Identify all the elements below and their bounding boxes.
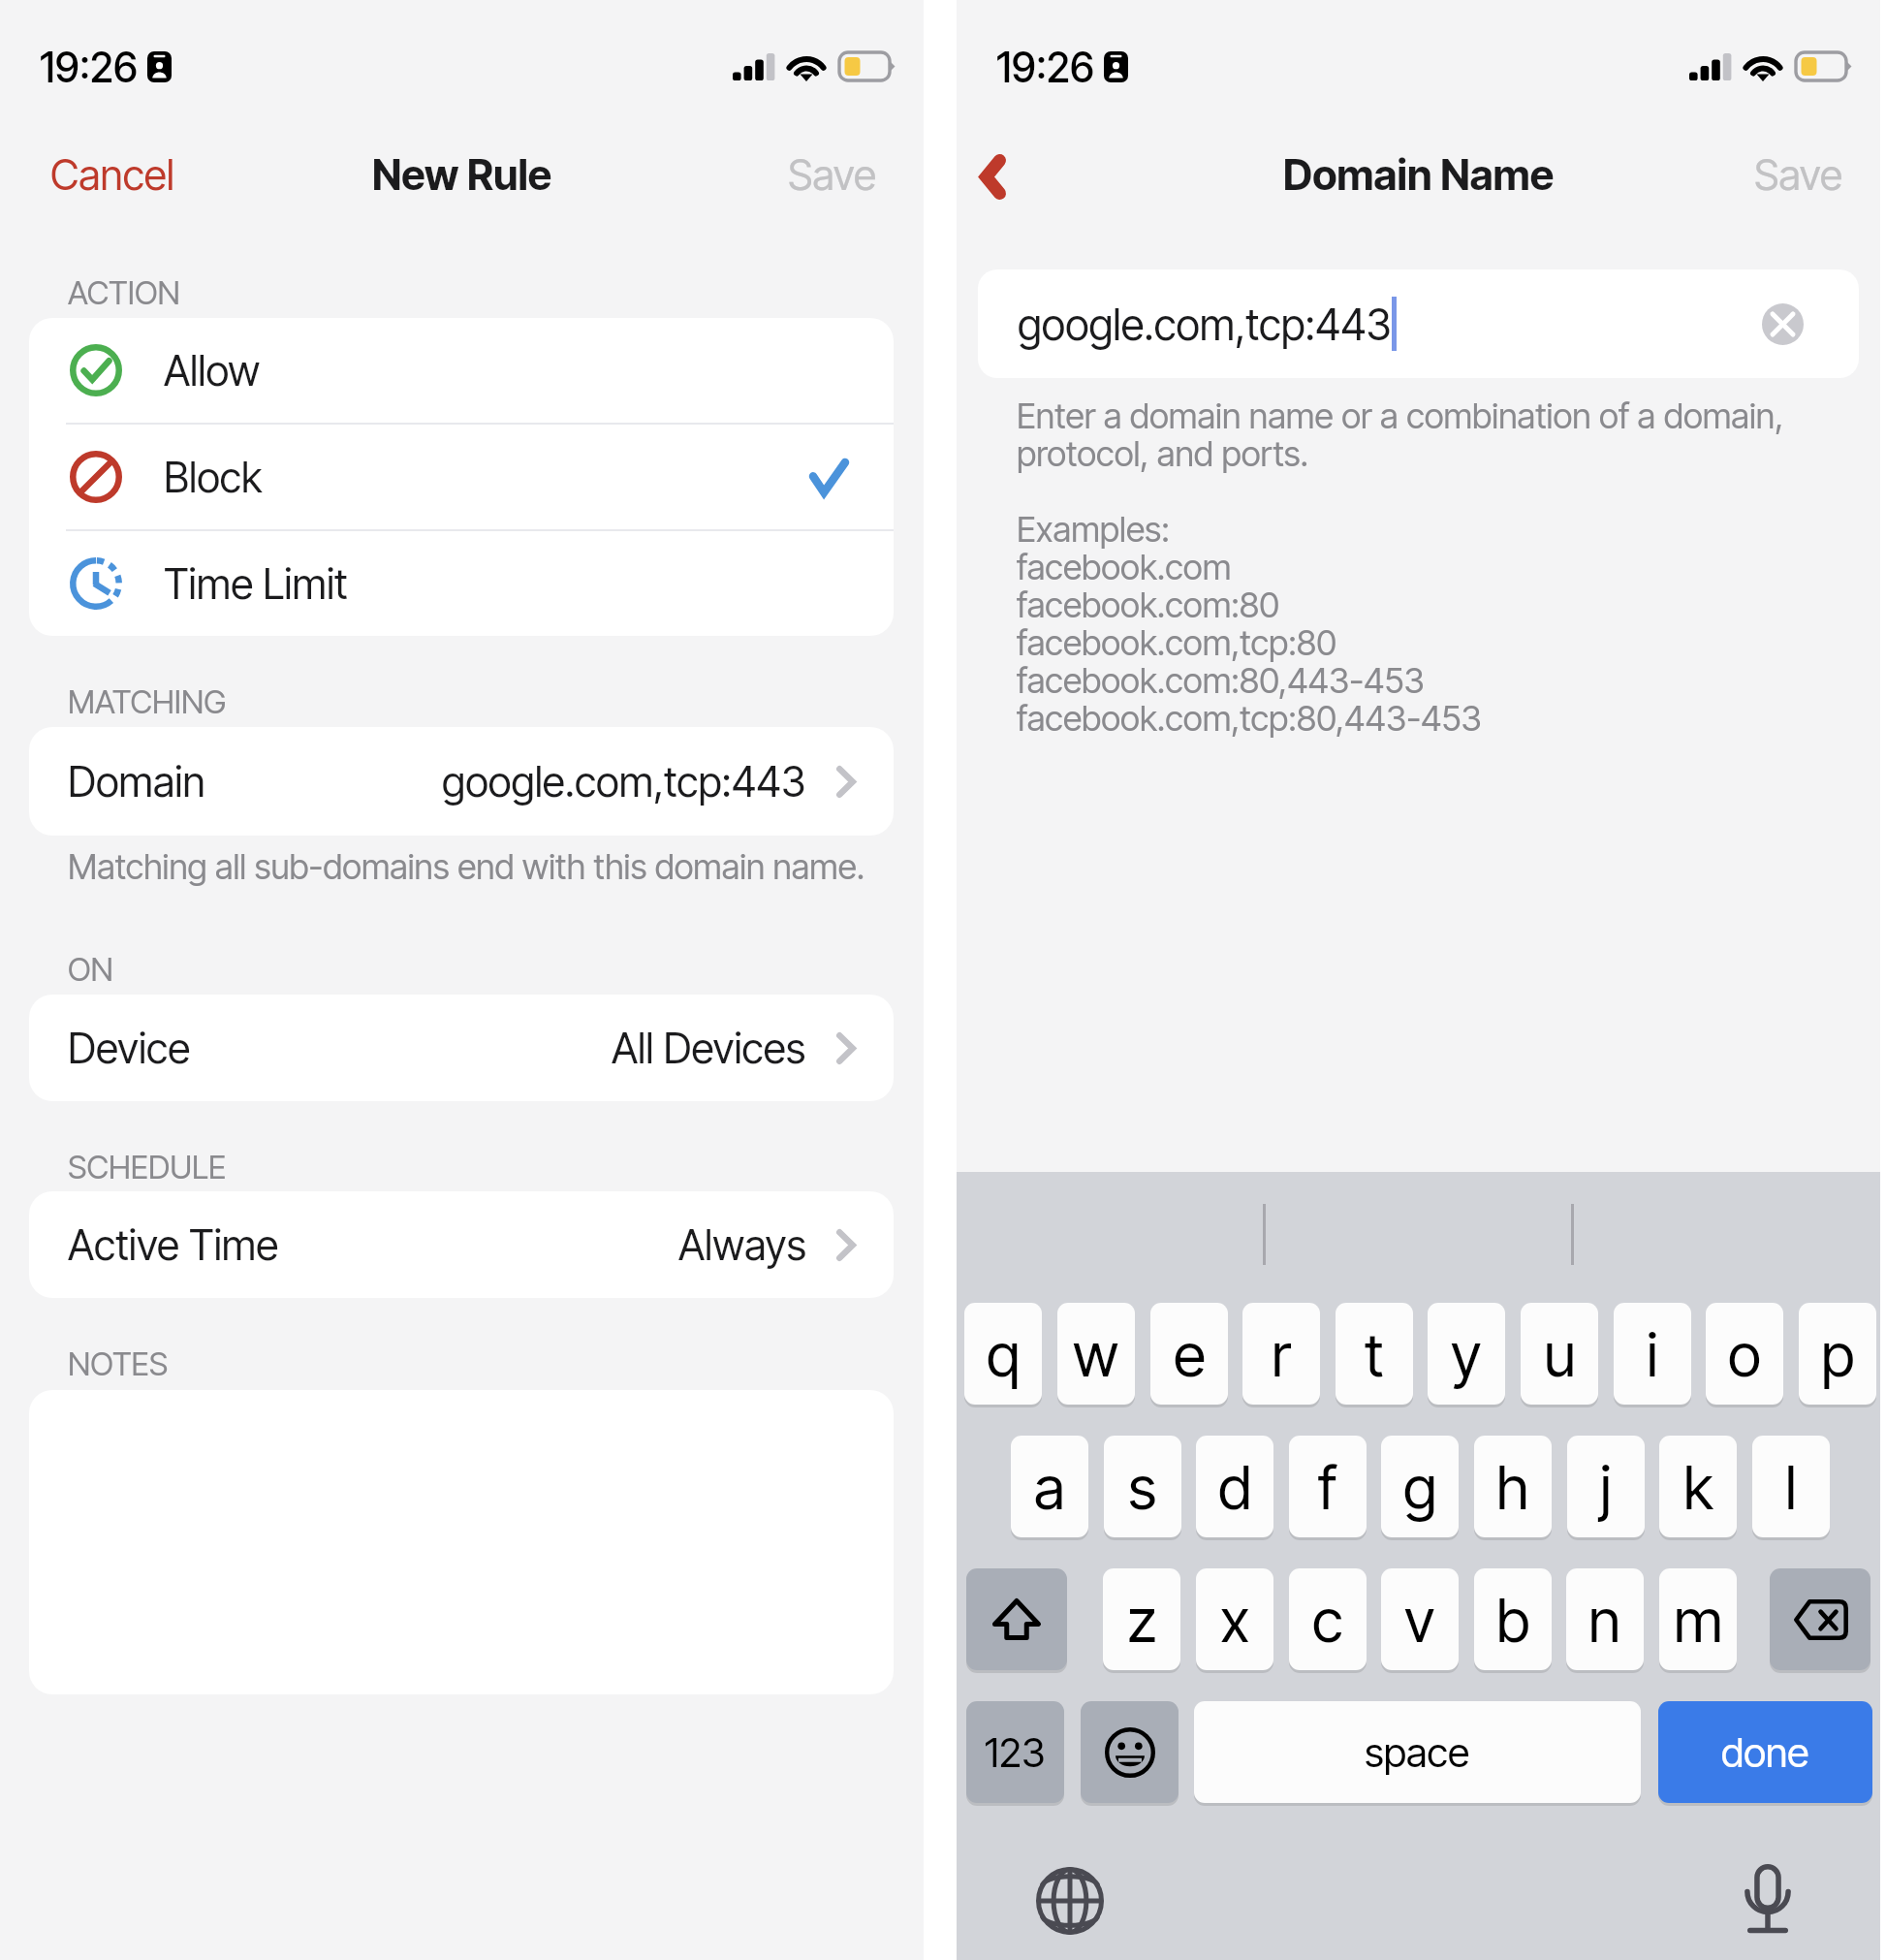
staticText: u (1544, 1318, 1576, 1390)
staticText: MATCHING (68, 682, 227, 721)
button[interactable]: Emoji (1081, 1701, 1179, 1803)
button[interactable]: w (1057, 1303, 1135, 1405)
button[interactable]: b (1474, 1568, 1552, 1670)
button[interactable]: f (1289, 1436, 1367, 1537)
staticText: w (1073, 1318, 1119, 1390)
button[interactable]: Backspace (1770, 1568, 1870, 1670)
staticText: n (1588, 1584, 1621, 1656)
button[interactable]: e (1150, 1303, 1228, 1405)
staticText: h (1496, 1451, 1529, 1523)
staticText: google.com,tcp:443 (442, 756, 806, 806)
button[interactable]: v (1381, 1568, 1459, 1670)
button[interactable]: h (1474, 1436, 1552, 1537)
button[interactable]: Active Time (29, 1191, 894, 1298)
staticText: l (1785, 1451, 1797, 1523)
staticText: e (1174, 1318, 1206, 1390)
staticText: o (1728, 1318, 1761, 1390)
button[interactable]: t (1336, 1303, 1413, 1405)
button[interactable]: l (1752, 1436, 1830, 1537)
staticText: x (1220, 1584, 1250, 1656)
button[interactable]: Back (962, 137, 1023, 217)
staticText: p (1821, 1318, 1855, 1390)
button[interactable]: Save (770, 140, 894, 209)
staticText: 19:26 (996, 43, 1094, 92)
staticText: j (1600, 1451, 1612, 1523)
staticText: ACTION (68, 273, 180, 312)
staticText: Allow (164, 345, 261, 395)
button[interactable]: r (1242, 1303, 1320, 1405)
staticText: a (1034, 1451, 1065, 1523)
staticText: k (1683, 1451, 1713, 1523)
button[interactable]: Device (29, 995, 894, 1101)
staticText: y (1451, 1318, 1482, 1390)
staticText: Active Time (68, 1219, 279, 1270)
button[interactable]: done (1658, 1701, 1872, 1803)
button[interactable]: i (1614, 1303, 1691, 1405)
button[interactable]: n (1566, 1568, 1644, 1670)
staticText: space (1365, 1728, 1470, 1777)
staticText: Save (788, 149, 876, 200)
button[interactable]: Domain (29, 727, 894, 836)
button[interactable]: Time Limit (29, 531, 894, 636)
button[interactable]: Shift (966, 1568, 1067, 1670)
button[interactable]: g (1381, 1436, 1459, 1537)
button[interactable]: z (1103, 1568, 1180, 1670)
staticText: 19:26 (40, 43, 138, 92)
button[interactable]: u (1521, 1303, 1598, 1405)
staticText: v (1404, 1584, 1435, 1656)
staticText: 123 (985, 1728, 1046, 1777)
button[interactable]: Change keyboard (1036, 1867, 1104, 1935)
button[interactable]: Clear text (1762, 303, 1804, 345)
staticText: All Devices (612, 1023, 806, 1073)
staticText: Block (164, 452, 263, 502)
staticText: z (1127, 1584, 1157, 1656)
staticText: i (1647, 1318, 1658, 1390)
staticText: New Rule (372, 149, 552, 200)
button[interactable]: google.com,tcp:443 (978, 269, 1859, 378)
button[interactable]: m (1659, 1568, 1737, 1670)
button[interactable]: a (1011, 1436, 1088, 1537)
staticText: s (1128, 1451, 1157, 1523)
button[interactable]: 123 (966, 1701, 1064, 1803)
staticText: c (1312, 1584, 1343, 1656)
button[interactable]: y (1428, 1303, 1505, 1405)
button[interactable]: space (1194, 1701, 1641, 1803)
staticText: Save (1754, 149, 1842, 200)
button[interactable]: p (1799, 1303, 1876, 1405)
staticText: ON (68, 950, 113, 989)
button[interactable]: Allow (29, 318, 894, 423)
staticText: g (1403, 1451, 1437, 1523)
staticText: done (1721, 1728, 1809, 1777)
staticText: Always (678, 1219, 806, 1270)
staticText: Matching all sub-domains end with this d… (68, 845, 865, 887)
button[interactable]: j (1567, 1436, 1645, 1537)
button[interactable]: Block (29, 425, 894, 529)
staticText: Domain Name (1283, 149, 1555, 201)
button[interactable]: o (1706, 1303, 1783, 1405)
button[interactable]: c (1289, 1568, 1367, 1670)
staticText: m (1674, 1584, 1723, 1656)
staticText: Time Limit (164, 558, 348, 609)
staticText: NOTES (68, 1344, 169, 1383)
staticText: Device (68, 1023, 191, 1073)
staticText: r (1272, 1318, 1291, 1390)
button[interactable]: Dictate (1745, 1864, 1791, 1933)
staticText: SCHEDULE (68, 1148, 227, 1186)
staticText: d (1218, 1451, 1252, 1523)
staticText: f (1318, 1451, 1337, 1523)
button[interactable]: q (964, 1303, 1042, 1405)
button[interactable]: Cancel (33, 140, 192, 209)
staticText: Cancel (50, 149, 174, 200)
staticText: b (1496, 1584, 1530, 1656)
button[interactable]: k (1659, 1436, 1737, 1537)
staticText: t (1365, 1318, 1384, 1390)
button[interactable]: s (1104, 1436, 1181, 1537)
staticText: Domain (68, 756, 205, 806)
staticText: q (987, 1318, 1021, 1390)
button[interactable]: Save (1737, 140, 1860, 209)
button[interactable]: d (1196, 1436, 1273, 1537)
staticText: Enter a domain name or a combination of … (1017, 395, 1850, 740)
button[interactable]: x (1196, 1568, 1273, 1670)
staticText: google.com,tcp:443 (1018, 299, 1392, 350)
